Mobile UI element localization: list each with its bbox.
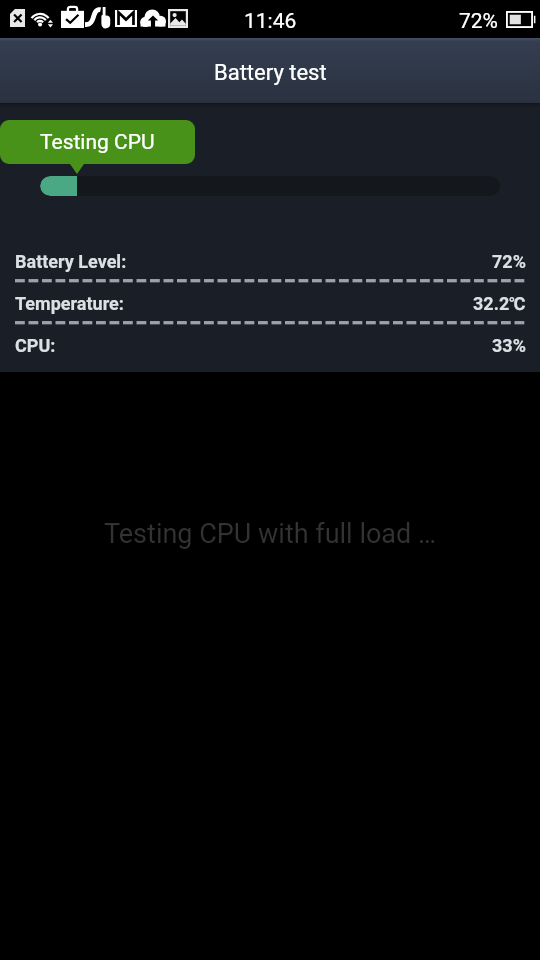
staticText: Temperature:: [15, 293, 124, 314]
button[interactable]: Testing CPU: [0, 120, 195, 164]
staticText: 11:46: [244, 9, 297, 34]
staticText: Battery test: [214, 60, 327, 86]
staticText: CPU:: [15, 335, 56, 356]
staticText: 33%: [492, 335, 526, 356]
button[interactable]: Battery test: [0, 38, 540, 103]
staticText: 32.2℃: [473, 293, 526, 314]
staticText: 72%: [459, 9, 498, 34]
staticText: Testing CPU with full load …: [0, 518, 540, 550]
staticText: 72%: [492, 251, 526, 272]
button[interactable]: [40, 176, 500, 196]
staticText: Testing CPU: [40, 130, 155, 155]
staticText: Battery Level:: [15, 251, 127, 272]
